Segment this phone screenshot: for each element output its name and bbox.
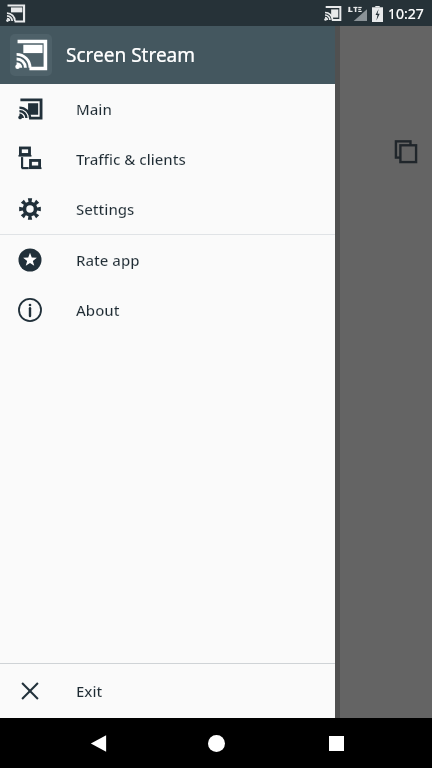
staticText: Exit bbox=[76, 681, 103, 701]
staticText: Main bbox=[76, 99, 112, 119]
button[interactable]: Settings bbox=[0, 184, 335, 234]
button[interactable]: Traffic & clients bbox=[0, 134, 335, 184]
button[interactable]: About bbox=[0, 285, 335, 335]
button[interactable]: Main bbox=[0, 84, 335, 134]
button[interactable]: Copy bbox=[392, 138, 420, 166]
staticText: Traffic & clients bbox=[76, 149, 186, 169]
staticText: Screen Stream bbox=[66, 42, 196, 68]
staticText: About bbox=[76, 300, 120, 320]
button[interactable]: Exit bbox=[0, 664, 335, 718]
staticText: Settings bbox=[76, 199, 135, 219]
button[interactable]: Screen Stream bbox=[0, 26, 335, 84]
button[interactable]: Rate app bbox=[0, 235, 335, 285]
button[interactable]: Back bbox=[78, 718, 118, 768]
button[interactable]: Recents bbox=[316, 718, 356, 768]
button[interactable]: Home bbox=[196, 718, 236, 768]
staticText: Rate app bbox=[76, 250, 140, 270]
staticText: 10:27 bbox=[388, 4, 424, 23]
